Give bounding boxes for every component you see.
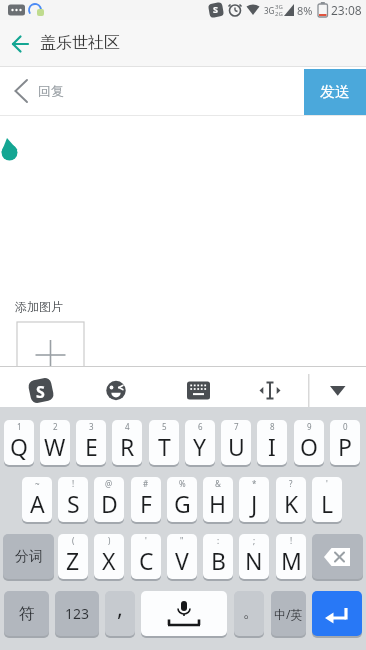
staticText: 123 xyxy=(65,604,90,623)
staticText: D xyxy=(101,488,118,519)
staticText: : xyxy=(217,535,220,546)
staticText: ; xyxy=(253,535,256,546)
staticText: ' xyxy=(326,478,328,489)
button[interactable]: ' xyxy=(131,534,161,579)
staticText: C xyxy=(139,545,154,576)
staticText: U xyxy=(228,431,245,462)
button[interactable]: 。 xyxy=(234,591,264,636)
staticText: 5 xyxy=(162,421,167,432)
staticText: 1 xyxy=(17,421,22,432)
button[interactable]: 0 xyxy=(330,420,360,465)
button[interactable]: 7 xyxy=(221,420,251,465)
staticText: 3G xyxy=(264,5,275,16)
button[interactable]: 发送 xyxy=(304,69,366,115)
staticText: S xyxy=(213,3,218,15)
staticText: P xyxy=(338,431,352,462)
staticText: ) xyxy=(108,535,111,546)
staticText: L xyxy=(321,488,334,519)
button[interactable]: 1 xyxy=(4,420,34,465)
button[interactable]: # xyxy=(131,477,161,522)
staticText: X xyxy=(102,545,116,576)
button[interactable] xyxy=(0,366,74,407)
staticText: A xyxy=(30,488,45,519)
button[interactable] xyxy=(0,20,46,66)
staticText: 中/英 xyxy=(274,606,303,622)
button[interactable]: 中/英 xyxy=(271,591,306,636)
button[interactable]: % xyxy=(167,477,197,522)
staticText: & xyxy=(215,478,221,489)
button[interactable]: ; xyxy=(239,534,269,579)
button[interactable]: ! xyxy=(276,534,306,579)
button[interactable]: ~ xyxy=(22,477,52,522)
button[interactable]: , xyxy=(105,591,135,636)
staticText: Q xyxy=(10,431,28,462)
button[interactable]: ? xyxy=(276,477,306,522)
staticText: O xyxy=(300,431,318,462)
staticText: 3 xyxy=(89,421,94,432)
staticText: 7 xyxy=(234,421,239,432)
staticText: W xyxy=(44,431,66,462)
button[interactable] xyxy=(312,534,363,579)
staticText: * xyxy=(252,478,257,489)
button[interactable] xyxy=(74,366,147,407)
staticText: Z xyxy=(66,545,80,576)
staticText: 分词 xyxy=(15,548,43,566)
staticText: 盖乐世社区 xyxy=(40,33,120,53)
button[interactable]: ( xyxy=(58,534,88,579)
button[interactable] xyxy=(293,366,366,407)
button[interactable]: " xyxy=(167,534,197,579)
staticText: 3G xyxy=(275,3,283,11)
button[interactable] xyxy=(141,591,227,636)
staticText: 2 xyxy=(53,421,58,432)
staticText: B xyxy=(211,545,226,576)
staticText: K xyxy=(284,488,299,519)
button[interactable]: 分词 xyxy=(3,534,54,579)
staticText: 符 xyxy=(19,604,35,624)
staticText: 发送 xyxy=(320,83,350,102)
staticText: H xyxy=(209,488,227,519)
button[interactable]: ' xyxy=(312,477,342,522)
staticText: % xyxy=(179,478,186,489)
button[interactable]: 9 xyxy=(294,420,324,465)
staticText: , xyxy=(117,592,123,622)
button[interactable]: 符 xyxy=(4,591,49,636)
staticText: 2G xyxy=(275,10,283,18)
button[interactable]: & xyxy=(203,477,233,522)
staticText: @ xyxy=(105,478,113,489)
button[interactable]: ! xyxy=(58,477,88,522)
staticText: T xyxy=(158,431,171,462)
staticText: ? xyxy=(289,478,293,489)
staticText: 。 xyxy=(243,602,259,622)
staticText: 9 xyxy=(307,421,312,432)
button[interactable]: @ xyxy=(94,477,124,522)
button[interactable]: 6 xyxy=(185,420,215,465)
button[interactable]: : xyxy=(203,534,233,579)
staticText: Y xyxy=(193,431,207,462)
staticText: 8% xyxy=(297,3,313,18)
staticText: ! xyxy=(72,478,75,489)
button[interactable]: 4 xyxy=(112,420,142,465)
staticText: 0 xyxy=(343,421,348,432)
button[interactable] xyxy=(147,366,220,407)
staticText: I xyxy=(268,431,276,462)
button[interactable]: 2 xyxy=(40,420,70,465)
staticText: S xyxy=(67,488,80,519)
button[interactable] xyxy=(312,591,362,636)
staticText: V xyxy=(175,545,189,576)
staticText: ( xyxy=(72,535,75,546)
staticText: " xyxy=(180,535,184,546)
staticText: 4 xyxy=(125,421,130,432)
button[interactable]: 123 xyxy=(55,591,99,636)
staticText: J xyxy=(251,488,258,519)
button[interactable] xyxy=(17,322,84,368)
staticText: N xyxy=(245,545,263,576)
staticText: 回复 xyxy=(38,83,64,99)
button[interactable]: * xyxy=(239,477,269,522)
button[interactable]: 8 xyxy=(257,420,287,465)
button[interactable]: ) xyxy=(94,534,124,579)
button[interactable]: 5 xyxy=(149,420,179,465)
staticText: 23:08 xyxy=(331,2,362,18)
button[interactable] xyxy=(220,366,293,407)
staticText: S xyxy=(36,381,45,403)
button[interactable]: 3 xyxy=(76,420,106,465)
